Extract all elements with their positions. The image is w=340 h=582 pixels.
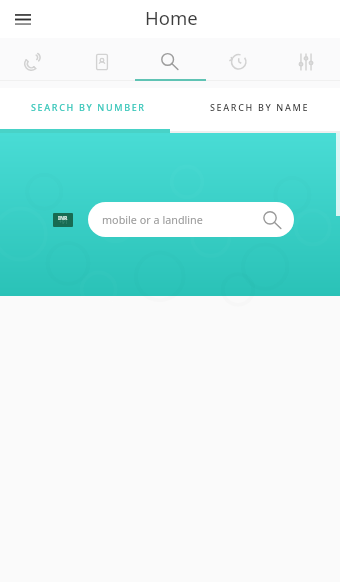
button[interactable]: Menu [7,3,39,35]
button[interactable]: Settings [272,38,340,88]
staticText: +91 [59,219,68,226]
button[interactable]: Calls [0,38,68,88]
staticText: INR [58,215,68,222]
staticText: SEARCH BY NUMBER [31,101,146,113]
staticText: SEARCH BY NAME [210,101,310,113]
staticText: mobile or a landline [102,212,203,227]
button[interactable]: History [204,38,272,88]
staticText: Home [145,5,198,30]
button[interactable]: Contacts [68,38,136,88]
button[interactable]: Search [136,38,204,88]
button[interactable]: mobile or a landline [88,202,294,237]
button[interactable]: SEARCH BY NUMBER [0,88,170,133]
button[interactable]: SEARCH BY NAME [170,88,340,133]
button[interactable]: Country code [53,213,73,227]
